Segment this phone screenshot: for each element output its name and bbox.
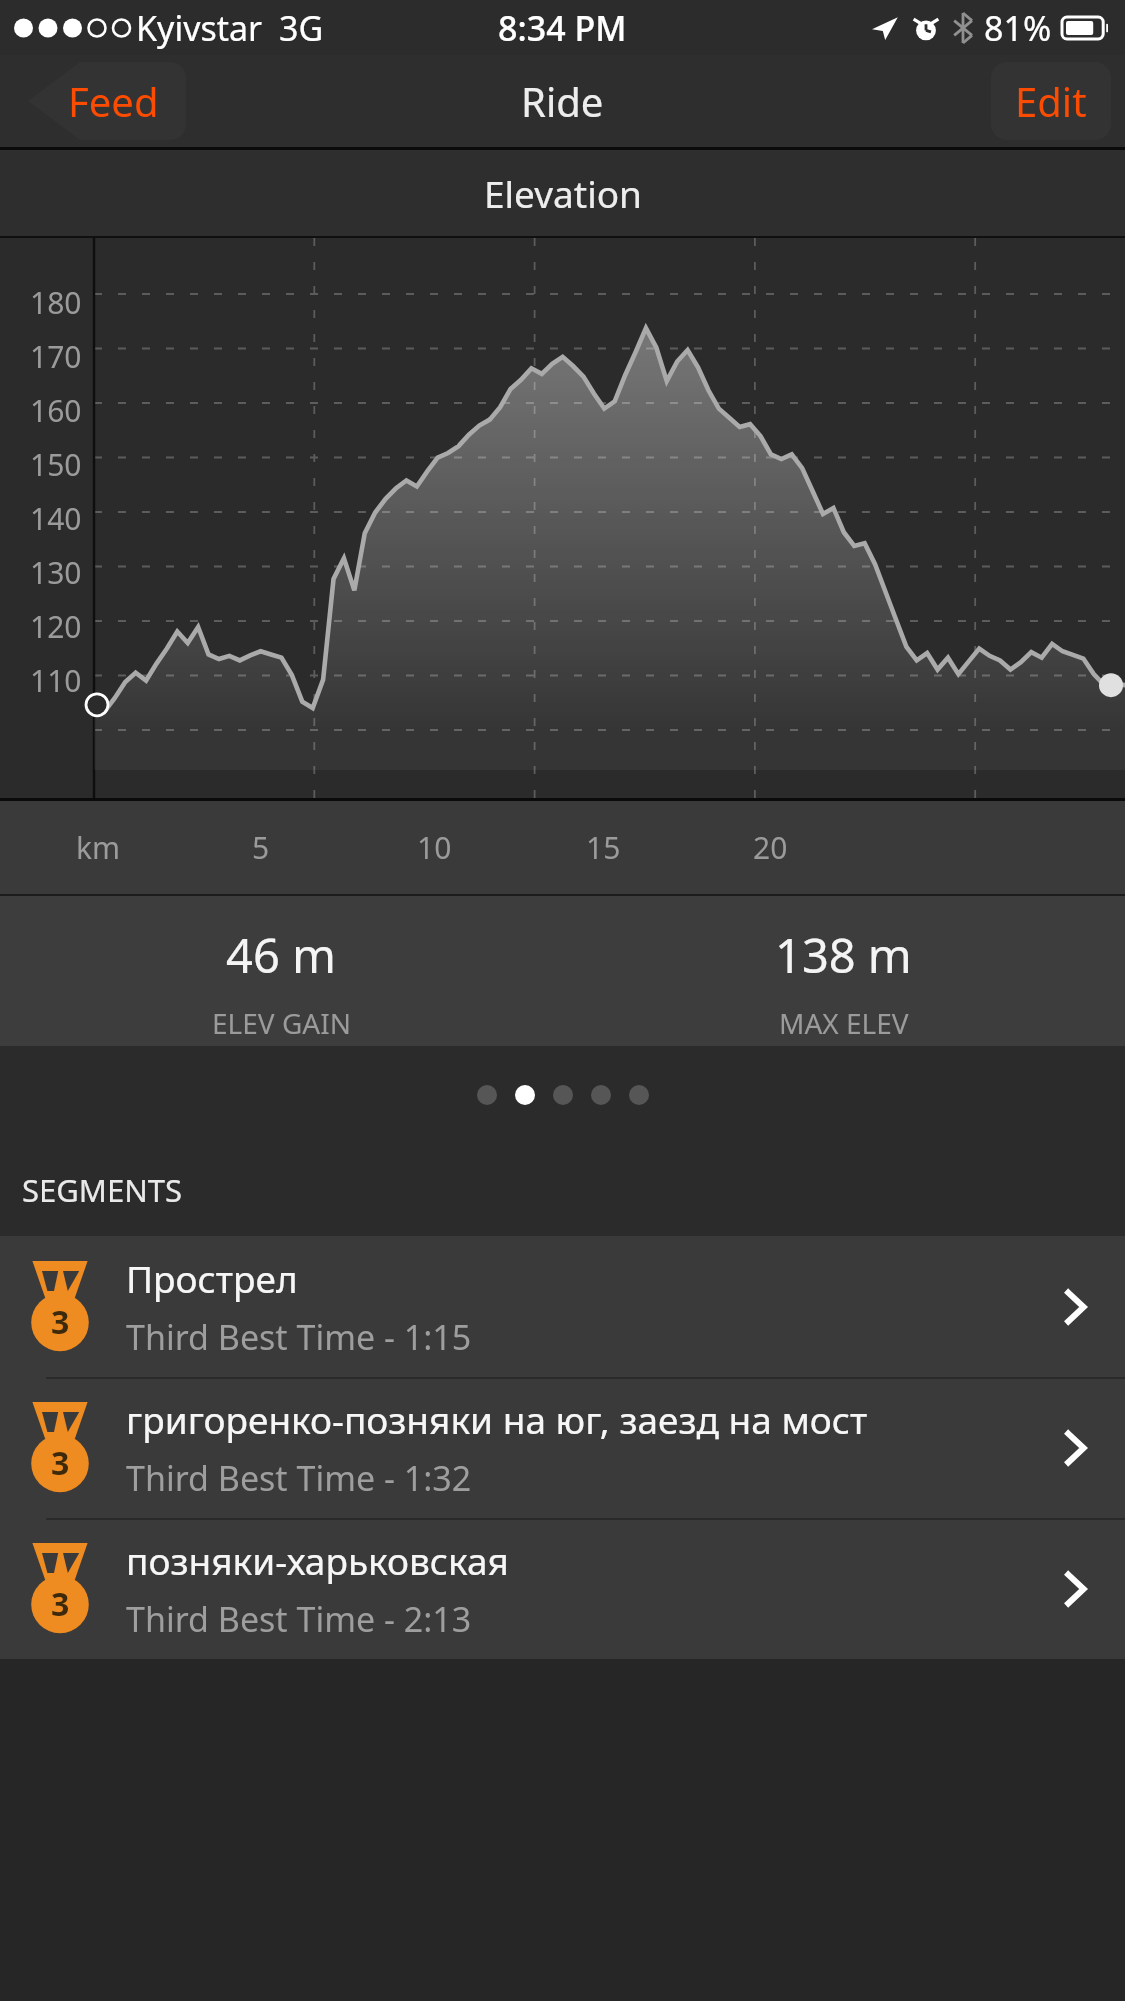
button[interactable]: 3 [0, 1377, 1125, 1518]
other: Open segment [1051, 1283, 1099, 1331]
staticText: km [76, 827, 121, 868]
staticText: 150 [30, 444, 82, 485]
staticText: григоренко-позняки на юг, заезд на мост [126, 1394, 868, 1444]
button[interactable]: 3 [0, 1518, 1125, 1659]
staticText: 5 [252, 827, 270, 868]
staticText: 10 [417, 827, 452, 868]
staticText: 180 [30, 282, 82, 323]
staticText: Прострел [126, 1253, 298, 1303]
button[interactable]: 3 [0, 1236, 1125, 1377]
staticText: 160 [30, 390, 82, 431]
button[interactable] [515, 1085, 535, 1105]
staticText: Elevation [484, 168, 642, 218]
staticText: 130 [30, 552, 82, 593]
staticText: 3 [51, 1441, 70, 1485]
staticText: MAX ELEV [779, 1004, 909, 1042]
staticText: Third Best Time - 1:15 [126, 1314, 472, 1360]
button[interactable]: Feed [10, 62, 186, 140]
staticText: Third Best Time - 2:13 [126, 1596, 472, 1642]
staticText: 110 [30, 660, 82, 701]
staticText: Feed [68, 74, 159, 128]
staticText: 81% [984, 5, 1052, 51]
staticText: 170 [30, 336, 82, 377]
button[interactable] [477, 1085, 497, 1105]
staticText: 8:34 PM [498, 5, 627, 51]
staticText: Kyivstar [136, 5, 263, 51]
staticText: Edit [1015, 74, 1087, 128]
other: Open segment [1051, 1424, 1099, 1472]
button[interactable] [591, 1085, 611, 1105]
staticText: 15 [586, 827, 621, 868]
staticText: 140 [30, 498, 82, 539]
staticText: 3 [51, 1582, 70, 1626]
staticText: 120 [30, 606, 82, 647]
button[interactable] [629, 1085, 649, 1105]
button[interactable] [553, 1085, 573, 1105]
staticText: Ride [521, 74, 604, 128]
staticText: 46 m [226, 923, 336, 987]
staticText: SEGMENTS [22, 1169, 182, 1211]
staticText: ELEV GAIN [212, 1004, 351, 1042]
staticText: 20 [753, 827, 788, 868]
staticText: 3G [279, 5, 324, 51]
staticText: 138 m [775, 923, 912, 987]
staticText: позняки-харьковская [126, 1535, 509, 1585]
staticText: 3 [51, 1300, 70, 1344]
staticText: Third Best Time - 1:32 [126, 1455, 472, 1501]
button[interactable]: Edit [991, 62, 1111, 140]
other: Open segment [1051, 1565, 1099, 1613]
